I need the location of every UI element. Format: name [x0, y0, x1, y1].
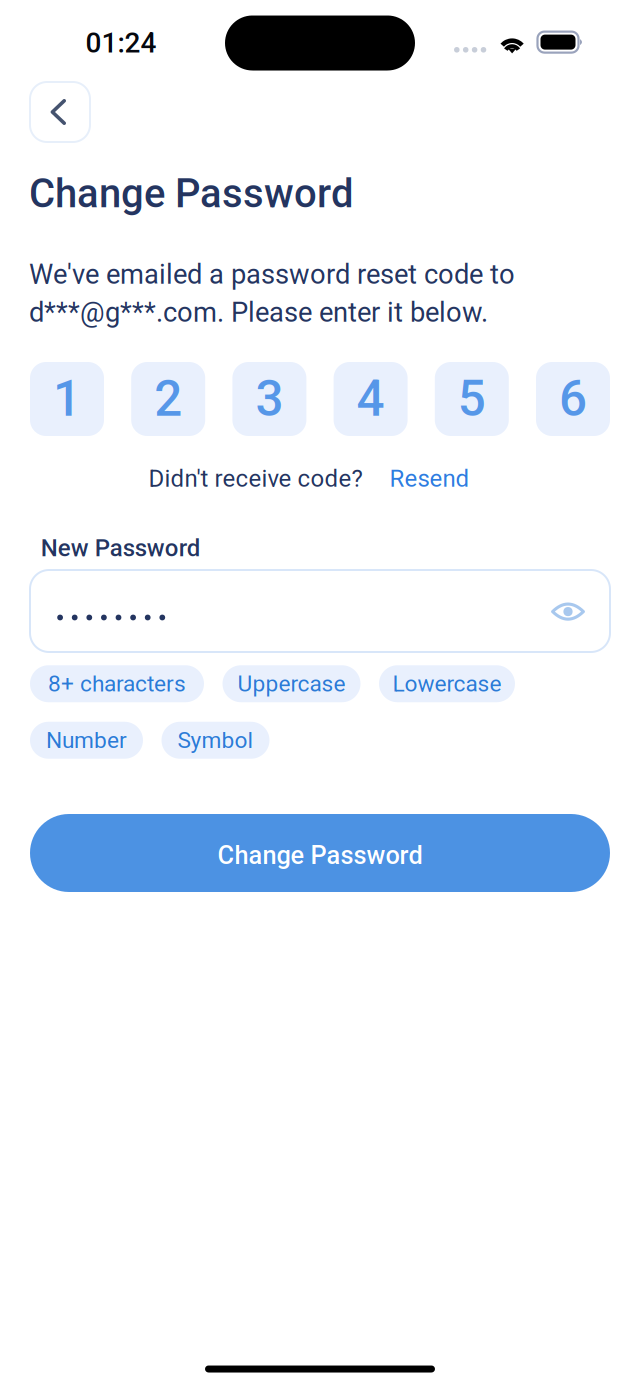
staticText: 6 — [559, 370, 587, 428]
staticText: New Password — [41, 534, 201, 562]
button[interactable]: 1 — [30, 362, 104, 436]
button[interactable]: Change Password — [30, 814, 610, 892]
staticText: Uppercase — [237, 670, 345, 697]
staticText: 4 — [357, 370, 385, 428]
staticText: Change Password — [29, 170, 354, 217]
staticText: Change Password — [217, 840, 422, 870]
button[interactable]: Uppercase — [222, 665, 360, 702]
button[interactable]: Show password — [551, 600, 585, 623]
button[interactable]: 6 — [536, 362, 610, 436]
staticText: 2 — [154, 370, 182, 428]
button[interactable]: Lowercase — [379, 665, 515, 702]
staticText: 1 — [53, 370, 81, 428]
button[interactable]: 4 — [334, 362, 408, 436]
button[interactable]: 3 — [232, 362, 306, 436]
staticText: Didn't receive code? — [148, 464, 362, 492]
staticText: We've emailed a password reset code to — [29, 258, 515, 290]
button[interactable]: 8+ characters — [30, 665, 204, 702]
button[interactable]: Symbol — [161, 722, 269, 759]
staticText: 8+ characters — [48, 670, 186, 697]
button[interactable]: 2 — [131, 362, 205, 436]
staticText: Lowercase — [392, 670, 501, 697]
staticText: d***@g***.com. Please enter it below. — [29, 296, 488, 328]
staticText: Resend — [389, 464, 469, 492]
button[interactable]: 5 — [435, 362, 509, 436]
staticText: 3 — [255, 370, 283, 428]
button[interactable]: Back — [30, 82, 90, 142]
staticText: Number — [46, 727, 127, 754]
button[interactable]: Number — [30, 722, 143, 759]
staticText: 01:24 — [85, 27, 156, 59]
staticText: Symbol — [177, 727, 253, 754]
button[interactable]: Resend — [389, 460, 469, 496]
staticText: 5 — [458, 370, 486, 428]
